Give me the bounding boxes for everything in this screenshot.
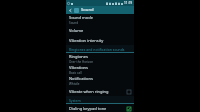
staticText: System: [69, 98, 81, 103]
staticText: Sound: [69, 21, 79, 25]
other: Sound icon: [74, 8, 79, 13]
staticText: Vibration intensity: [69, 38, 104, 43]
staticText: Notifications: [69, 76, 93, 81]
button[interactable]: Back: [66, 6, 134, 14]
staticText: Whistle: [69, 82, 80, 86]
staticText: Ringtones and notification sounds: [69, 47, 125, 52]
button[interactable]: Vibrations: [66, 64, 134, 75]
button[interactable]: Vibrate when ringing toggle: [126, 89, 131, 94]
staticText: Vibrate when ringing: [69, 89, 109, 94]
staticText: Sound mode: [69, 15, 93, 20]
staticText: Volume: [69, 28, 84, 33]
button[interactable]: Dialing keypad tone toggle: [126, 106, 131, 111]
button[interactable]: Vibration intensity: [66, 35, 134, 45]
staticText: 11:19: [124, 1, 133, 5]
staticText: Vibrations: [69, 65, 88, 70]
button[interactable]: Ringtones: [66, 53, 134, 64]
button[interactable]: Volume: [66, 25, 134, 35]
staticText: Basic call: [69, 71, 82, 75]
staticText: Sound: [81, 7, 94, 13]
button[interactable]: Sound mode: [66, 14, 134, 25]
staticText: Over the Horizon: [69, 60, 94, 64]
button[interactable]: Back: [68, 8, 73, 13]
button[interactable]: Notifications: [66, 75, 134, 86]
button[interactable]: Dialing keypad tone: [66, 104, 134, 112]
button[interactable]: Vibrate when ringing: [66, 86, 134, 96]
staticText: Dialing keypad tone: [69, 106, 107, 111]
staticText: Ringtones: [69, 54, 88, 59]
